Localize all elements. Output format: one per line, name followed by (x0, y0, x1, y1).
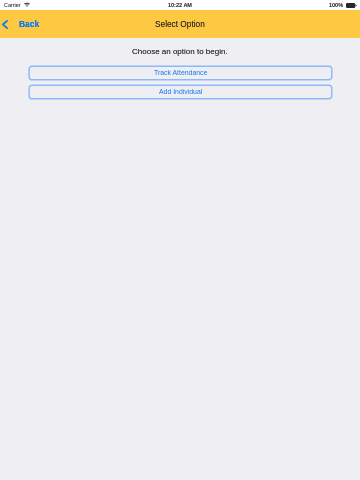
staticText: Carrier (4, 2, 21, 8)
button[interactable]: Track Attendance (28, 65, 333, 81)
staticText: Select Option (155, 19, 205, 28)
staticText: 10:22 AM (168, 2, 192, 8)
other: Back (2, 20, 8, 29)
staticText: Back (19, 19, 40, 28)
staticText: 10:22 AM (168, 2, 192, 8)
staticText: 100% (329, 2, 344, 8)
staticText: Back (19, 19, 40, 28)
staticText: Select Option (155, 19, 205, 28)
button[interactable]: Back (2, 14, 40, 34)
staticText: Add Individual (159, 88, 203, 96)
staticText: Track Attendance (154, 69, 208, 77)
staticText: Carrier (4, 2, 21, 8)
staticText: 100% (329, 2, 344, 8)
staticText: Choose an option to begin. (132, 47, 228, 56)
staticText: Choose an option to begin. (132, 47, 228, 56)
button[interactable]: Add Individual (28, 84, 333, 100)
